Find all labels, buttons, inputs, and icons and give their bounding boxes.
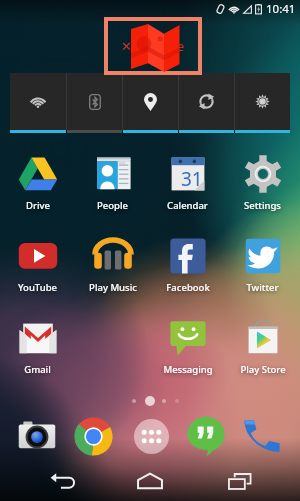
button[interactable]: People — [75, 154, 150, 212]
button[interactable]: Home — [128, 461, 172, 501]
staticText: Settings — [244, 199, 281, 212]
button[interactable]: Bluetooth — [67, 73, 122, 130]
button[interactable]: Messaging — [150, 318, 225, 376]
button[interactable]: Twitter — [225, 236, 300, 294]
button[interactable]: Play Music — [75, 236, 150, 294]
button[interactable]: Calendar — [150, 154, 225, 212]
button[interactable]: Sync — [179, 73, 234, 130]
staticText: 31 — [181, 166, 203, 192]
staticText: Twitter — [246, 281, 279, 294]
button[interactable]: YouTube — [0, 236, 75, 294]
staticText: ✕ Remove — [121, 37, 185, 55]
staticText: People — [97, 199, 128, 212]
button[interactable]: Wi-Fi — [10, 73, 66, 130]
button[interactable]: Camera — [14, 413, 60, 459]
staticText: YouTube — [18, 281, 57, 294]
button[interactable]: Chrome — [70, 413, 116, 459]
button[interactable]: Drive — [0, 154, 75, 212]
staticText: Facebook — [166, 281, 210, 294]
button[interactable]: Facebook — [150, 236, 225, 294]
button[interactable]: Recents — [218, 461, 262, 501]
staticText: Gmail — [24, 363, 51, 376]
button[interactable]: Apps — [128, 413, 174, 459]
button[interactable]: Gmail — [0, 318, 75, 376]
staticText: Play Store — [240, 363, 286, 376]
staticText: Calendar — [167, 199, 208, 212]
button[interactable]: Location — [123, 73, 178, 130]
staticText: Messaging — [163, 363, 213, 376]
staticText: 10:41 — [266, 1, 296, 17]
button[interactable]: Hangouts — [183, 413, 229, 459]
button[interactable]: Play Store — [225, 318, 300, 376]
button[interactable]: Brightness — [235, 73, 290, 130]
button[interactable]: Back — [41, 461, 85, 501]
button[interactable]: Settings — [225, 154, 300, 212]
button[interactable]: Phone — [239, 413, 285, 459]
staticText: Play Music — [89, 281, 137, 294]
staticText: Drive — [26, 199, 50, 212]
